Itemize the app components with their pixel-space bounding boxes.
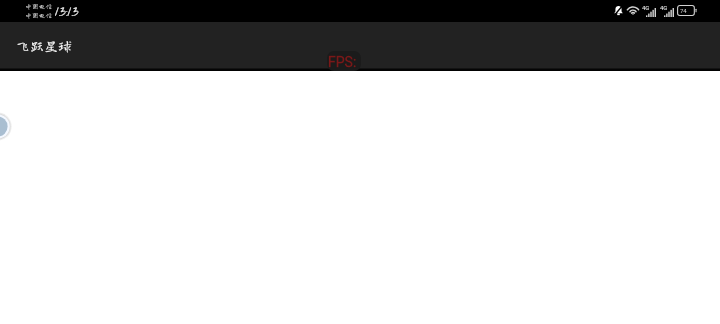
- staticText: 中国电信: [25, 3, 53, 10]
- staticText: 13:13: [55, 3, 79, 22]
- button[interactable]: Floating assistant: [0, 112, 12, 141]
- staticText: 74: [680, 7, 687, 14]
- button[interactable]: 飞跃星球: [8, 33, 80, 59]
- staticText: 中国电信: [25, 12, 53, 19]
- button[interactable]: FPS meter: [327, 51, 361, 71]
- staticText: 4G: [642, 4, 650, 11]
- staticText: FPS:: [328, 54, 357, 70]
- staticText: 飞跃星球: [16, 39, 72, 53]
- staticText: 4G: [660, 4, 668, 11]
